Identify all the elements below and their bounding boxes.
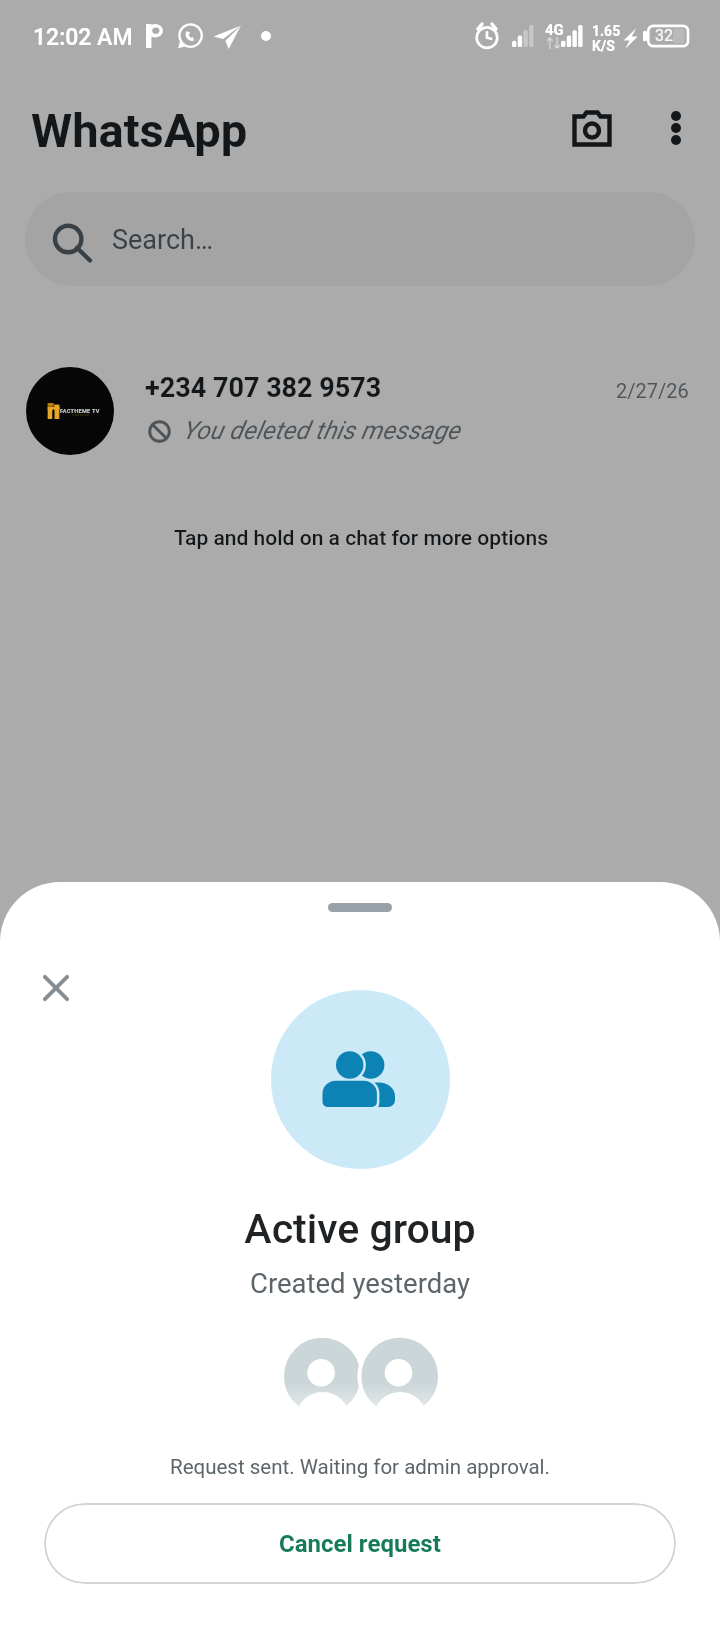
staticText: 12:02 AM: [33, 24, 133, 51]
staticText: +234 707 382 9573: [145, 372, 382, 404]
staticText: FACTHEME TV: [60, 408, 100, 415]
staticText: Request sent. Waiting for admin approval…: [0, 1455, 720, 1479]
staticText: Cancel request: [279, 1530, 441, 1558]
staticText: Active group: [0, 1205, 720, 1253]
button[interactable]: More options: [636, 86, 716, 166]
staticText: in god we trust: [72, 414, 90, 417]
staticText: Created yesterday: [0, 1267, 720, 1299]
staticText: 32: [655, 26, 673, 45]
staticText: 2/27/26: [616, 379, 689, 402]
staticText: You deleted this message: [182, 416, 460, 445]
button[interactable]: Camera: [552, 86, 632, 166]
staticText: K/S: [592, 38, 615, 54]
button[interactable]: Search…: [25, 192, 695, 286]
button[interactable]: Close: [20, 952, 92, 1024]
button[interactable]: FACTHEME TV: [0, 348, 720, 478]
staticText: 1.65: [592, 23, 621, 39]
button[interactable]: Cancel request: [44, 1503, 676, 1584]
staticText: Tap and hold on a chat for more options: [1, 526, 720, 551]
staticText: WhatsApp: [31, 103, 248, 158]
staticText: Search…: [112, 224, 213, 256]
staticText: 4G: [545, 21, 564, 39]
